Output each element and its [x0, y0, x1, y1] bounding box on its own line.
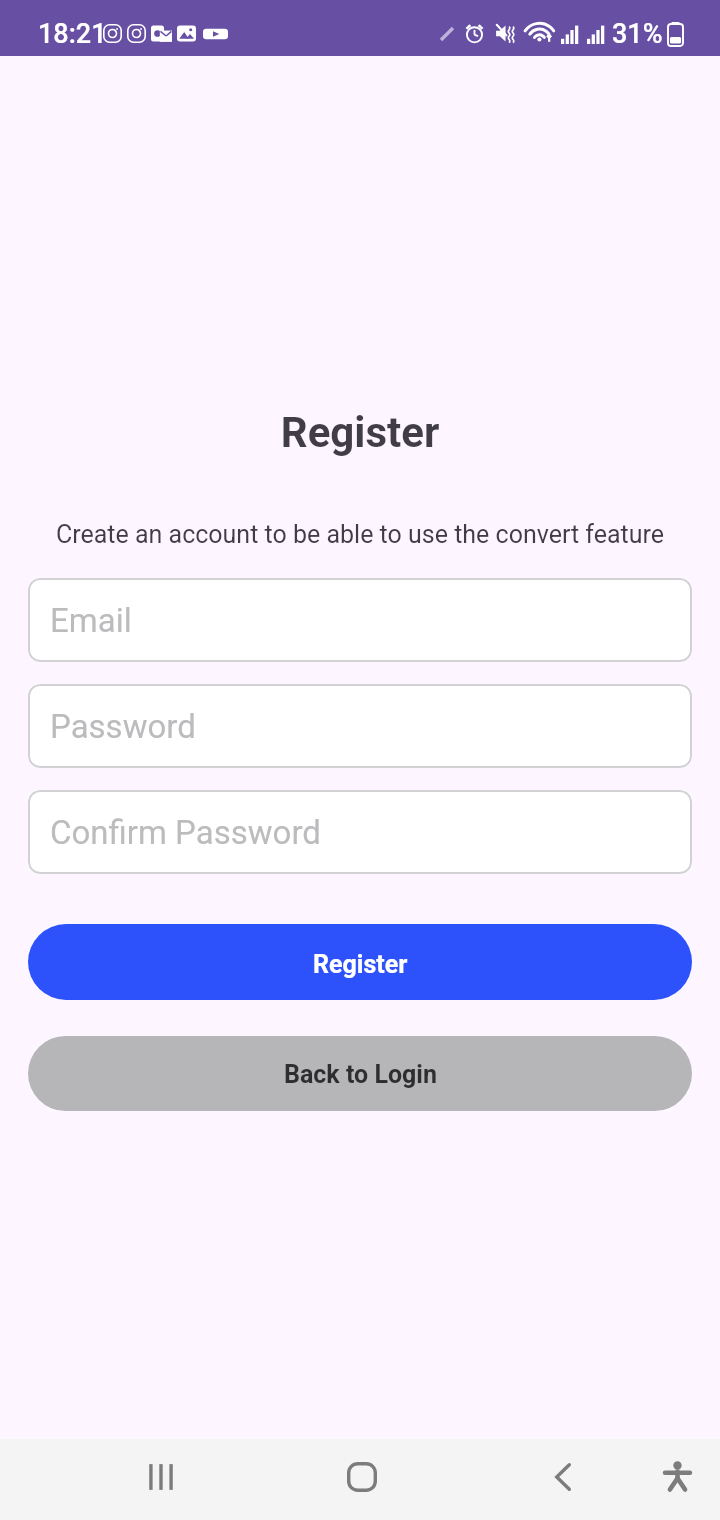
button[interactable]: Back [529, 1439, 597, 1520]
staticText: 31% [612, 18, 663, 50]
button[interactable]: Recents [127, 1439, 195, 1520]
staticText: Create an account to be able to use the … [0, 520, 720, 549]
button[interactable]: Password [28, 684, 692, 768]
button[interactable]: Register [28, 924, 692, 1000]
staticText: Register [313, 950, 408, 979]
staticText: Back to Login [284, 1060, 437, 1089]
staticText: 18:21 [38, 18, 107, 50]
button[interactable]: Home [328, 1439, 396, 1520]
staticText: Confirm Password [50, 813, 321, 852]
button[interactable]: Back to Login [28, 1036, 692, 1111]
staticText: Email [50, 601, 132, 640]
button[interactable]: Accessibility [643, 1439, 711, 1520]
staticText: Register [0, 408, 720, 457]
button[interactable]: Confirm Password [28, 790, 692, 874]
button[interactable]: Email [28, 578, 692, 662]
staticText: Password [50, 707, 196, 746]
